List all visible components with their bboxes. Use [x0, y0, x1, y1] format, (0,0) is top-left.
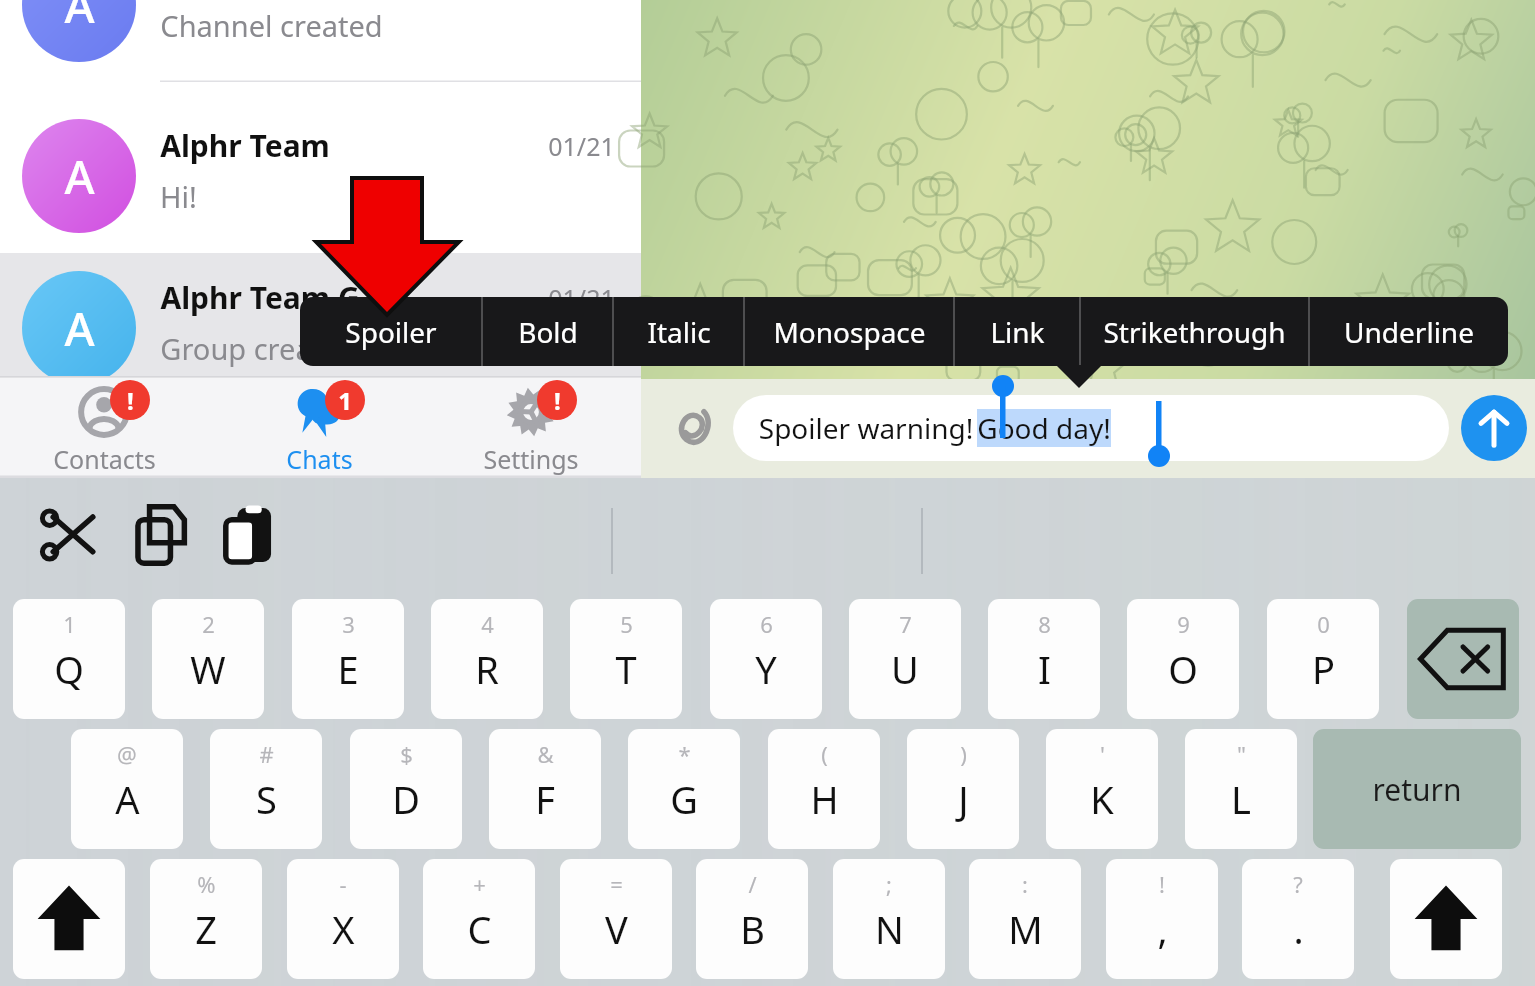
button[interactable]: " — [1185, 729, 1297, 849]
staticText: Q — [54, 643, 84, 695]
button[interactable]: & — [489, 729, 601, 849]
staticText: 5 — [620, 609, 633, 639]
staticText: X — [332, 903, 355, 955]
button[interactable]: Shift — [13, 859, 125, 979]
staticText: P — [1312, 643, 1335, 695]
staticText: A — [64, 0, 95, 37]
staticText: Chats — [286, 442, 353, 476]
staticText: Good day! — [977, 409, 1111, 447]
staticText: : — [1022, 869, 1028, 899]
button[interactable]: ! — [16, 382, 192, 474]
staticText: W — [190, 643, 226, 695]
button[interactable]: ; — [833, 859, 945, 979]
staticText: Channel created — [160, 6, 383, 45]
button[interactable]: # — [210, 729, 322, 849]
staticText: - — [339, 869, 347, 899]
button[interactable]: : — [969, 859, 1081, 979]
staticText: A — [64, 297, 95, 360]
button[interactable]: Copy — [131, 503, 189, 567]
button[interactable]: 0 — [1267, 599, 1379, 719]
staticText: U — [891, 643, 919, 695]
staticText: 6 — [760, 609, 773, 639]
button[interactable]: 1 — [231, 382, 407, 474]
button[interactable]: / — [696, 859, 808, 979]
button[interactable]: ! — [443, 382, 619, 474]
staticText: Hi! — [160, 177, 197, 216]
button[interactable]: Send — [1461, 395, 1527, 461]
staticText: . — [1293, 903, 1304, 955]
button[interactable]: - — [287, 859, 399, 979]
staticText: ! — [554, 384, 561, 417]
staticText: " — [1237, 739, 1246, 769]
staticText: O — [1168, 643, 1198, 695]
button[interactable]: Shift — [1390, 859, 1502, 979]
button[interactable]: 9 — [1127, 599, 1239, 719]
button[interactable]: Link — [955, 297, 1079, 366]
button[interactable]: 4 — [431, 599, 543, 719]
staticText: # — [259, 739, 274, 769]
button[interactable]: Attach file — [661, 399, 719, 457]
button[interactable]: 3 — [292, 599, 404, 719]
button[interactable]: + — [423, 859, 535, 979]
button[interactable]: A — [0, 253, 641, 405]
button[interactable]: ! — [1106, 859, 1218, 979]
button[interactable]: Italic — [614, 297, 743, 366]
button[interactable]: ' — [1046, 729, 1158, 849]
staticText: T — [615, 643, 637, 695]
staticText: Settings — [483, 442, 579, 476]
button[interactable]: Backspace — [1407, 599, 1519, 719]
button[interactable]: * — [628, 729, 740, 849]
staticText: + — [473, 869, 486, 899]
staticText: R — [475, 643, 499, 695]
staticText: S — [256, 773, 277, 825]
staticText: L — [1231, 773, 1251, 825]
button[interactable]: 7 — [849, 599, 961, 719]
staticText: A — [64, 145, 95, 208]
staticText: ! — [127, 384, 134, 417]
button[interactable]: 2 — [152, 599, 264, 719]
staticText: , — [1157, 903, 1168, 955]
button[interactable]: A — [0, 101, 641, 253]
button[interactable]: Spoiler — [300, 297, 481, 366]
staticText: ; — [886, 869, 892, 899]
button[interactable]: Spoiler warning! — [733, 395, 1449, 461]
staticText: Underline — [1344, 313, 1474, 351]
staticText: / — [748, 869, 757, 899]
button[interactable]: Bold — [483, 297, 612, 366]
staticText: return — [1372, 769, 1462, 810]
button[interactable]: % — [150, 859, 262, 979]
button[interactable]: = — [560, 859, 672, 979]
staticText: Bold — [518, 313, 578, 351]
staticText: & — [537, 739, 554, 769]
button[interactable]: @ — [71, 729, 183, 849]
staticText: I — [1038, 643, 1051, 695]
button[interactable]: Cut — [40, 505, 100, 565]
button[interactable]: A — [0, 0, 641, 82]
button[interactable]: Strikethrough — [1081, 297, 1308, 366]
button[interactable]: ) — [907, 729, 1019, 849]
staticText: B — [740, 903, 765, 955]
button[interactable]: ( — [768, 729, 880, 849]
button[interactable]: $ — [350, 729, 462, 849]
button[interactable]: ? — [1242, 859, 1354, 979]
staticText: Strikethrough — [1103, 313, 1286, 351]
button[interactable]: 6 — [710, 599, 822, 719]
staticText: 2 — [202, 609, 215, 639]
staticText: E — [337, 643, 359, 695]
button[interactable]: return — [1313, 729, 1521, 849]
staticText: Link — [990, 313, 1045, 351]
staticText: G — [670, 773, 698, 825]
button[interactable]: Paste — [220, 503, 278, 567]
staticText: J — [958, 773, 969, 825]
staticText: Monospace — [773, 313, 926, 351]
staticText: 7 — [899, 609, 912, 639]
button[interactable]: Underline — [1310, 297, 1508, 366]
button[interactable]: 5 — [570, 599, 682, 719]
button[interactable]: 8 — [988, 599, 1100, 719]
staticText: = — [610, 869, 623, 899]
button[interactable]: 1 — [13, 599, 125, 719]
staticText: % — [197, 869, 216, 899]
staticText: N — [875, 903, 904, 955]
staticText: Spoiler warning! — [755, 409, 977, 447]
button[interactable]: Monospace — [745, 297, 953, 366]
